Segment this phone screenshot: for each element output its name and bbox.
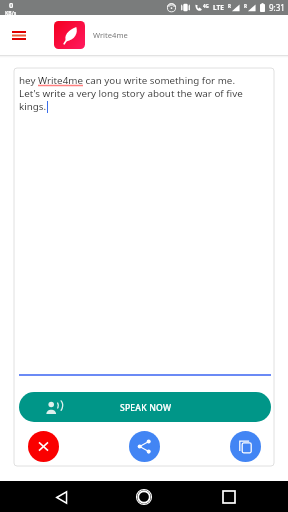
- staticText: kings.: [19, 100, 47, 113]
- staticText: Write4me: [93, 30, 128, 40]
- button[interactable]: Share: [129, 431, 160, 462]
- button[interactable]: Home: [130, 483, 158, 511]
- staticText: can you write something for me.: [83, 74, 236, 87]
- button[interactable]: Copy: [230, 431, 261, 462]
- staticText: R: [244, 3, 247, 9]
- button[interactable]: Back: [48, 483, 76, 511]
- button[interactable]: Recents: [215, 483, 243, 511]
- staticText: Let's write a very long story about the …: [19, 87, 243, 100]
- staticText: R: [228, 3, 231, 9]
- staticText: hey: [19, 74, 38, 87]
- staticText: SPEAK NOW: [120, 402, 172, 414]
- staticText: 0: [9, 0, 14, 10]
- staticText: Write4me: [38, 74, 83, 87]
- staticText: 9:31: [269, 2, 285, 13]
- button[interactable]: Clear: [28, 431, 59, 462]
- staticText: 4G: [203, 3, 209, 9]
- button[interactable]: Menu: [3, 19, 35, 51]
- staticText: KB/s: [5, 10, 17, 15]
- button[interactable]: SPEAK NOW: [19, 392, 271, 422]
- staticText: LTE: [213, 3, 224, 12]
